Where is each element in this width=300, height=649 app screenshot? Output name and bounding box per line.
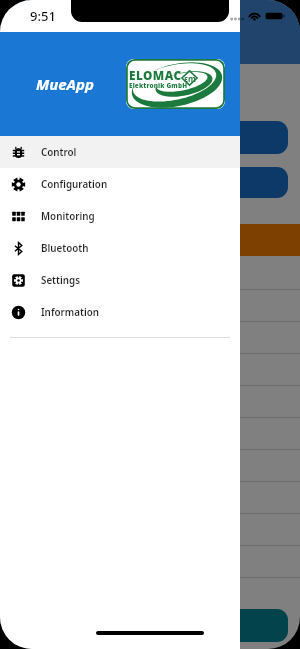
- staticText: Settings: [41, 274, 81, 287]
- staticText: Configuration: [41, 178, 108, 191]
- staticText: Information: [41, 306, 99, 319]
- staticText: Monitoring: [41, 210, 95, 223]
- staticText: 9:51: [30, 7, 56, 25]
- button[interactable]: [12, 167, 288, 198]
- button[interactable]: Monitoring: [0, 200, 240, 232]
- other: Bluetooth disconnected: [170, 85, 190, 105]
- staticText: Bluetooth: [41, 242, 89, 255]
- button[interactable]: Control: [0, 136, 240, 168]
- staticText: Elektronik GmbH: [129, 81, 188, 90]
- staticText: εm: [184, 73, 196, 84]
- staticText: Control: [41, 146, 77, 159]
- staticText: ELOMAC: [129, 67, 182, 83]
- button[interactable]: [12, 121, 288, 154]
- button[interactable]: Settings: [0, 264, 240, 296]
- button[interactable]: Bluetooth: [0, 232, 240, 264]
- button[interactable]: Information: [0, 296, 240, 328]
- staticText: MueApp: [36, 74, 94, 94]
- button[interactable]: [12, 79, 156, 110]
- button[interactable]: [12, 609, 288, 642]
- button[interactable]: Configuration: [0, 168, 240, 200]
